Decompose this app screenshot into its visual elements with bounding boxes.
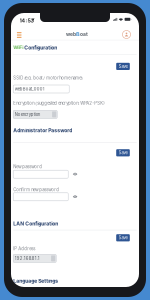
staticText: New password — [13, 164, 42, 169]
staticText: webBoat_0001 — [15, 86, 45, 91]
button[interactable]: Save — [116, 234, 130, 241]
staticText: No encryption — [15, 112, 40, 117]
staticText: 192.168.81.1 — [15, 256, 40, 261]
staticText: Save — [118, 150, 127, 155]
staticText: WiFi — [13, 45, 23, 51]
staticText: Save — [118, 64, 127, 69]
staticText: Save — [118, 235, 127, 240]
button[interactable]: Save — [116, 149, 130, 156]
staticText: Encryption (suggested encryption: WPA2-P… — [13, 101, 105, 106]
button[interactable]: Account — [121, 29, 132, 40]
button[interactable]: Menu — [14, 29, 25, 40]
button[interactable]: Save — [116, 63, 130, 70]
staticText: oat — [80, 31, 88, 37]
staticText: Administrator Password — [13, 127, 72, 133]
staticText: IP Address — [13, 246, 35, 251]
staticText: SSID (e.g. boat / motorhome name) — [13, 75, 83, 80]
staticText: B — [76, 31, 80, 38]
staticText: LAN Configuration — [13, 221, 58, 227]
staticText: web — [66, 31, 76, 37]
staticText: Language Settings — [13, 278, 58, 284]
staticText: 14:53 — [20, 17, 34, 24]
staticText: Confirm new password — [13, 187, 59, 192]
staticText: Configuration — [24, 45, 57, 51]
